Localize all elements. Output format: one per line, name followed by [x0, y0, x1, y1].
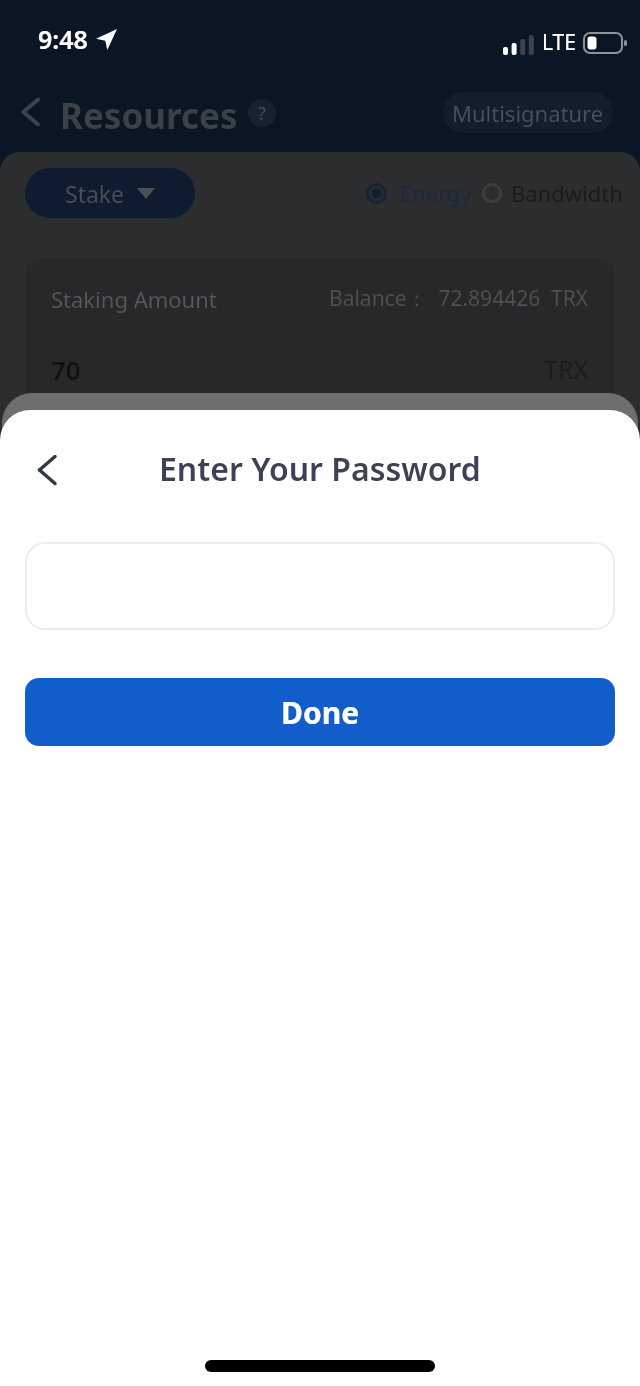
staticText: Bandwidth — [511, 178, 623, 208]
button[interactable]: ? — [248, 99, 276, 127]
button[interactable] — [12, 92, 48, 132]
button[interactable] — [24, 448, 68, 492]
button[interactable]: Stake — [25, 168, 195, 218]
staticText: TRX — [544, 352, 589, 386]
staticText: Done — [281, 692, 360, 733]
staticText: Resources — [60, 92, 238, 140]
staticText: Stake — [65, 178, 125, 209]
staticText: Balance： 72.894426 TRX — [329, 284, 589, 313]
staticText: Enter Your Password — [159, 447, 481, 491]
button[interactable]: Multisignature — [443, 92, 613, 133]
staticText: 70 — [51, 352, 81, 387]
staticText: ? — [258, 101, 266, 126]
staticText: 9:48 — [38, 22, 88, 56]
button[interactable]: Energy — [366, 178, 472, 208]
staticText: LTE — [542, 28, 576, 57]
button[interactable]: Bandwidth — [482, 178, 623, 208]
staticText: Energy — [400, 178, 472, 208]
staticText: Multisignature — [452, 98, 604, 128]
button[interactable]: Done — [25, 678, 615, 746]
button[interactable] — [25, 542, 615, 630]
staticText: Staking Amount — [51, 284, 217, 314]
